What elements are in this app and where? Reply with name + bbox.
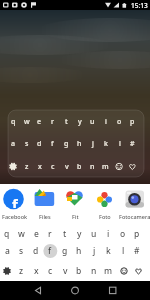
- staticText: l: [119, 139, 121, 149]
- staticText: v: [63, 265, 68, 277]
- button[interactable]: [63, 282, 88, 299]
- staticText: n: [91, 265, 97, 277]
- staticText: Facebook: [2, 213, 28, 220]
- staticText: q: [11, 117, 16, 127]
- staticText: w: [18, 228, 25, 240]
- staticText: k: [106, 245, 111, 257]
- button[interactable]: z: [14, 264, 28, 278]
- button[interactable]: b: [72, 264, 86, 278]
- staticText: Files: [39, 213, 51, 220]
- staticText: i: [105, 117, 107, 127]
- button[interactable]: w: [14, 227, 28, 241]
- staticText: x: [34, 265, 39, 277]
- button[interactable]: e: [29, 227, 43, 241]
- button[interactable]: l: [116, 244, 130, 258]
- staticText: i: [107, 228, 110, 240]
- staticText: t: [63, 228, 67, 240]
- button[interactable]: [25, 282, 50, 299]
- staticText: z: [19, 265, 24, 277]
- staticText: 15:13: [131, 1, 148, 10]
- button[interactable]: r: [43, 227, 57, 241]
- staticText: o: [120, 228, 126, 240]
- staticText: r: [48, 228, 52, 240]
- staticText: m: [104, 265, 113, 277]
- staticText: h: [77, 139, 82, 149]
- button[interactable]: [90, 184, 120, 222]
- button[interactable]: o: [116, 227, 130, 241]
- staticText: j: [92, 139, 94, 149]
- staticText: c: [51, 162, 55, 172]
- button[interactable]: p: [130, 227, 144, 241]
- staticText: c: [48, 265, 53, 277]
- button[interactable]: [100, 282, 125, 299]
- button[interactable]: [0, 264, 14, 278]
- staticText: m: [102, 162, 109, 172]
- button[interactable]: h: [72, 244, 86, 258]
- staticText: r: [51, 117, 54, 127]
- staticText: Foto: [99, 213, 111, 220]
- staticText: f: [51, 139, 54, 149]
- staticText: a: [5, 245, 10, 257]
- staticText: o: [117, 117, 122, 127]
- button[interactable]: [117, 264, 131, 278]
- button[interactable]: j: [87, 244, 101, 258]
- staticText: Fotocamera: [119, 213, 150, 220]
- staticText: g: [62, 245, 68, 257]
- staticText: f: [12, 194, 18, 208]
- staticText: #: [134, 245, 140, 257]
- staticText: p: [134, 228, 140, 240]
- staticText: y: [77, 228, 82, 240]
- staticText: d: [33, 245, 39, 257]
- button[interactable]: y: [72, 227, 86, 241]
- button[interactable]: [0, 184, 30, 222]
- button[interactable]: a: [0, 244, 14, 258]
- staticText: n: [90, 162, 95, 172]
- button[interactable]: m: [101, 264, 115, 278]
- staticText: t: [65, 117, 68, 127]
- staticText: p: [130, 117, 135, 127]
- staticText: #: [130, 139, 135, 149]
- staticText: l: [122, 245, 125, 257]
- staticText: g: [64, 139, 69, 149]
- staticText: u: [90, 117, 95, 127]
- staticText: Fit: [72, 213, 79, 220]
- button[interactable]: u: [87, 227, 101, 241]
- button[interactable]: [60, 184, 90, 222]
- staticText: w: [24, 117, 30, 127]
- staticText: u: [91, 228, 97, 240]
- staticText: d: [37, 139, 42, 149]
- button[interactable]: k: [101, 244, 115, 258]
- staticText: f: [48, 245, 52, 257]
- staticText: s: [19, 245, 24, 257]
- staticText: b: [77, 162, 82, 172]
- button[interactable]: [30, 184, 60, 222]
- button[interactable]: q: [0, 227, 14, 241]
- staticText: y: [78, 117, 82, 127]
- button[interactable]: i: [101, 227, 115, 241]
- staticText: s: [25, 139, 29, 149]
- button[interactable]: n: [87, 264, 101, 278]
- button[interactable]: x: [29, 264, 43, 278]
- staticText: b: [76, 265, 82, 277]
- button[interactable]: #: [130, 244, 144, 258]
- button[interactable]: v: [58, 264, 72, 278]
- button[interactable]: f: [43, 244, 57, 258]
- staticText: v: [65, 162, 69, 172]
- button[interactable]: t: [58, 227, 72, 241]
- staticText: h: [76, 245, 82, 257]
- staticText: j: [93, 245, 96, 257]
- button[interactable]: c: [43, 264, 57, 278]
- button[interactable]: d: [29, 244, 43, 258]
- button[interactable]: s: [14, 244, 28, 258]
- staticText: e: [34, 228, 39, 240]
- button[interactable]: [120, 184, 150, 222]
- staticText: z: [25, 162, 29, 172]
- staticText: x: [38, 162, 42, 172]
- staticText: k: [104, 139, 108, 149]
- staticText: a: [11, 139, 16, 149]
- staticText: q: [4, 228, 10, 240]
- staticText: e: [37, 117, 42, 127]
- button[interactable]: g: [58, 244, 72, 258]
- button[interactable]: [131, 264, 145, 278]
